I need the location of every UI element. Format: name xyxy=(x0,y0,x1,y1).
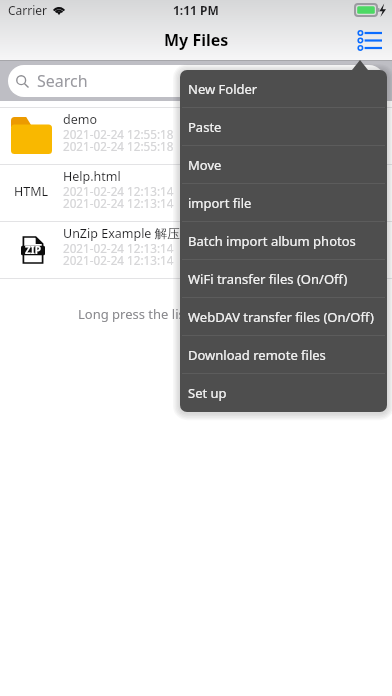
staticText: WebDAV transfer files (On/Off) xyxy=(188,308,374,326)
button[interactable]: New Folder xyxy=(180,70,387,108)
staticText: demo xyxy=(63,111,97,128)
staticText: New Folder xyxy=(188,80,258,98)
staticText: 2021-02-24 12:55:18 2021-02-24 12:55:18 xyxy=(63,126,174,154)
staticText: 2021-02-24 12:13:14 2021-02-24 12:13:14 xyxy=(63,183,174,211)
button[interactable]: HTML xyxy=(0,165,392,222)
button[interactable]: Batch import album photos xyxy=(180,222,387,260)
button[interactable]: Menu xyxy=(349,20,392,60)
staticText: Move xyxy=(188,156,222,174)
button[interactable]: demo xyxy=(0,108,392,165)
staticText: 2021-02-24 12:13:14 2021-02-24 12:13:14 xyxy=(63,240,174,268)
staticText: import file xyxy=(188,194,252,212)
staticText: Set up xyxy=(188,384,227,402)
staticText: Download remote files xyxy=(188,346,326,364)
button[interactable]: WebDAV transfer files (On/Off) xyxy=(180,298,387,336)
button[interactable]: WiFi transfer files (On/Off) xyxy=(180,260,387,298)
staticText: Help.html xyxy=(63,168,121,185)
button[interactable]: Search xyxy=(8,65,385,97)
staticText: 1:11 PM xyxy=(173,2,219,18)
staticText: Long press the list to delete or rename xyxy=(78,305,315,323)
button[interactable]: ZIP xyxy=(0,222,392,279)
staticText: Paste xyxy=(188,118,222,136)
staticText: Search xyxy=(37,70,88,92)
staticText: Carrier xyxy=(8,2,48,18)
button[interactable]: import file xyxy=(180,184,387,222)
staticText: HTML xyxy=(14,183,49,200)
staticText: UnZip Example 解压示例 xyxy=(63,225,205,242)
staticText: My Files xyxy=(164,29,229,51)
staticText: Batch import album photos xyxy=(188,232,356,250)
button[interactable]: Paste xyxy=(180,108,387,146)
button[interactable]: Download remote files xyxy=(180,336,387,374)
staticText: WiFi transfer files (On/Off) xyxy=(188,270,348,288)
button[interactable]: Move xyxy=(180,146,387,184)
staticText: ZIP xyxy=(25,243,41,257)
button[interactable]: Set up xyxy=(180,374,387,412)
